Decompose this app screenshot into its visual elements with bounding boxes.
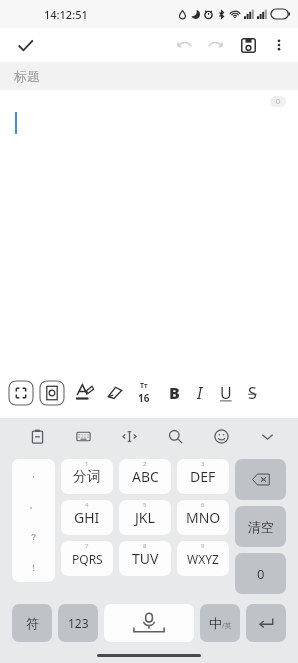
button[interactable]: Keyboard settings — [68, 421, 98, 451]
staticText: 分词 — [73, 468, 101, 486]
button[interactable]: MNO — [177, 500, 229, 535]
button[interactable]: Text color — [71, 380, 97, 406]
staticText: S — [248, 382, 257, 404]
button[interactable]: Fullscreen — [8, 380, 34, 406]
staticText: 123 — [68, 615, 89, 631]
staticText: 1 — [85, 460, 89, 468]
button[interactable]: GHI — [61, 500, 113, 535]
button[interactable]: Emoji — [206, 421, 236, 451]
staticText: 清空 — [248, 519, 274, 535]
button[interactable]: Clipboard — [22, 421, 52, 451]
staticText: WXYZ — [187, 551, 219, 567]
staticText: 7 — [85, 542, 89, 550]
staticText: 5 — [143, 501, 147, 509]
staticText: PQRS — [72, 551, 103, 567]
button[interactable]: TUV — [119, 541, 171, 576]
button[interactable]: 标题 — [0, 62, 298, 90]
button[interactable]: S — [239, 378, 265, 408]
staticText: B — [169, 382, 180, 404]
staticText: 2 — [143, 460, 147, 468]
button[interactable]: PQRS — [61, 541, 113, 576]
button[interactable]: 0 — [235, 553, 286, 594]
staticText: 4 — [85, 501, 89, 509]
button[interactable]: 中 — [200, 604, 240, 642]
staticText: TUV — [132, 549, 159, 568]
staticText: 。 — [29, 499, 38, 510]
staticText: 0 — [257, 565, 265, 583]
staticText: 3 — [201, 460, 205, 468]
button[interactable]: 0 — [0, 90, 298, 378]
staticText: 8 — [143, 542, 147, 550]
button[interactable]: Backspace — [235, 459, 286, 500]
button[interactable]: Done — [10, 30, 40, 60]
button[interactable]: B — [161, 378, 187, 408]
staticText: ABC — [132, 467, 159, 486]
staticText: 6 — [201, 501, 205, 509]
button[interactable]: Undo — [168, 29, 200, 61]
staticText: 中 — [209, 615, 222, 631]
button[interactable]: 符 — [12, 604, 52, 642]
button[interactable]: Move cursor — [114, 421, 144, 451]
button[interactable]: 分词 — [61, 459, 113, 494]
staticText: DEF — [190, 467, 216, 486]
staticText: /英 — [222, 621, 232, 631]
button[interactable]: WXYZ — [177, 541, 229, 576]
button[interactable]: Redo — [200, 29, 232, 61]
staticText: Tт — [140, 381, 148, 391]
button[interactable]: Save — [232, 29, 264, 61]
staticText: I — [197, 382, 203, 404]
staticText: 16 — [138, 391, 150, 405]
staticText: ， — [29, 468, 38, 479]
button[interactable]: 清空 — [235, 506, 286, 547]
button[interactable]: ABC — [119, 459, 171, 494]
button[interactable]: Highlighter — [101, 380, 127, 406]
button[interactable]: ， — [12, 459, 55, 582]
staticText: 0 — [276, 97, 281, 107]
staticText: 9 — [201, 542, 205, 550]
staticText: 标题 — [14, 68, 40, 84]
staticText: ！ — [29, 562, 38, 573]
button[interactable]: JKL — [119, 500, 171, 535]
button[interactable]: U — [213, 378, 239, 408]
button[interactable]: Space, voice input — [104, 604, 194, 642]
button[interactable]: Font size 16 — [131, 380, 157, 406]
button[interactable]: Search — [160, 421, 190, 451]
staticText: ？ — [29, 531, 38, 542]
staticText: 符 — [26, 615, 39, 631]
staticText: MNO — [186, 508, 221, 527]
button[interactable]: Document settings — [39, 380, 65, 406]
staticText: GHI — [74, 508, 100, 527]
staticText: U — [220, 382, 232, 404]
staticText: JKL — [135, 508, 155, 527]
staticText: 14:12:51 — [44, 7, 88, 22]
button[interactable]: Enter — [246, 604, 286, 642]
button[interactable]: 123 — [58, 604, 98, 642]
button[interactable]: I — [187, 378, 213, 408]
button[interactable]: Collapse keyboard — [252, 421, 282, 451]
button[interactable]: DEF — [177, 459, 229, 494]
button[interactable]: More options — [264, 30, 294, 60]
